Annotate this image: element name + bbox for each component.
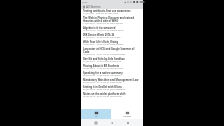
staticText: 04 Jun 2016 · 11:12 AM by Isaac Orsen xyxy=(83,81,122,84)
button[interactable]: Unread xyxy=(111,109,143,119)
button[interactable]: Dev Kit and Side-by-Side Sandbox xyxy=(81,57,143,64)
staticText: Notes on the wider platform shift xyxy=(83,92,126,95)
staticText: 12 Jul 2017 · 5:30 PM by Udo Tesse xyxy=(83,12,119,15)
button[interactable]: Mandatory Waistline and Management Low xyxy=(81,78,143,85)
staticText: 10 Jun 2017 · 07:21 AM by Alf Salamander xyxy=(83,53,126,56)
button[interactable]: All xyxy=(81,109,111,119)
staticText: 12 Jun 2017 · 10:22 AM by Agatha Smith xyxy=(83,29,124,32)
staticText: 11 Jun 2017 · 07:50 AM by Carl Olsen xyxy=(83,36,121,39)
button[interactable]: Algebra is it its rumoured xyxy=(81,26,143,33)
staticText: 03 Jun 2016 · 05:52 PM by Quilt Unsworth xyxy=(83,88,126,91)
button[interactable]: Speaking for a native summary xyxy=(81,71,143,78)
staticText: All Stories xyxy=(86,5,101,9)
staticText: Dev Kit and Side-by-Side Sandbox xyxy=(83,57,125,60)
staticText: 07 Jun 2017 · 01:00 AM by El Morocco xyxy=(83,60,122,63)
staticText: 14 Jun 2017 · 03:33 PM by Hans Gerber xyxy=(83,22,123,25)
button[interactable]: IRK Device Week 2016-36 xyxy=(81,33,143,40)
button[interactable]: Lancaster at HCG and Google Summer of Co… xyxy=(81,47,143,57)
button[interactable]: Placing About it BR Students xyxy=(81,64,143,71)
button[interactable]: Home xyxy=(126,119,130,126)
button[interactable]: Back xyxy=(110,119,114,126)
staticText: The Web in Physics: Discover and extend … xyxy=(83,16,141,22)
staticText: Testing antibiotic-first use awareness xyxy=(83,9,131,12)
staticText: Unread xyxy=(123,115,131,118)
staticText: Speaking for a native summary xyxy=(83,71,123,74)
staticText: Lancaster at HCG and Google Summer of Co… xyxy=(83,47,141,53)
button[interactable]: Setting it in DevRel with Elliots xyxy=(81,85,143,92)
button[interactable]: Open navigation menu xyxy=(82,5,85,8)
button[interactable]: The Web in Physics: Discover and extend … xyxy=(81,16,143,26)
staticText: All xyxy=(95,115,98,118)
staticText: Algebra is it its rumoured xyxy=(83,26,116,29)
staticText: IRK Device Week 2016-36 xyxy=(83,33,115,36)
button[interactable]: With Your Life's Role, Rising xyxy=(81,40,143,47)
staticText: Placing About it BR Students xyxy=(83,64,120,67)
button[interactable]: Recents xyxy=(94,119,98,126)
staticText: 10 Jun 2017 · 02:23 PM by Marty Kimber xyxy=(83,43,124,46)
staticText: 02 Jun 2016 · 09:14 AM by Lena Torres xyxy=(83,95,122,98)
button[interactable]: Notes on the wider platform shift xyxy=(81,92,143,99)
staticText: Mandatory Waistline and Management Low xyxy=(83,78,139,81)
staticText: 06 Jun 2017 · 11:43 PM by Henrik Olson xyxy=(83,67,124,70)
staticText: 05 Jun 2017 · 11:05 AM by Alan Jones xyxy=(83,74,121,77)
staticText: With Your Life's Role, Rising xyxy=(83,40,119,43)
staticText: Setting it in DevRel with Elliots xyxy=(83,85,122,88)
button[interactable]: Testing antibiotic-first use awareness xyxy=(81,9,143,16)
staticText: 10:07 xyxy=(82,1,88,4)
